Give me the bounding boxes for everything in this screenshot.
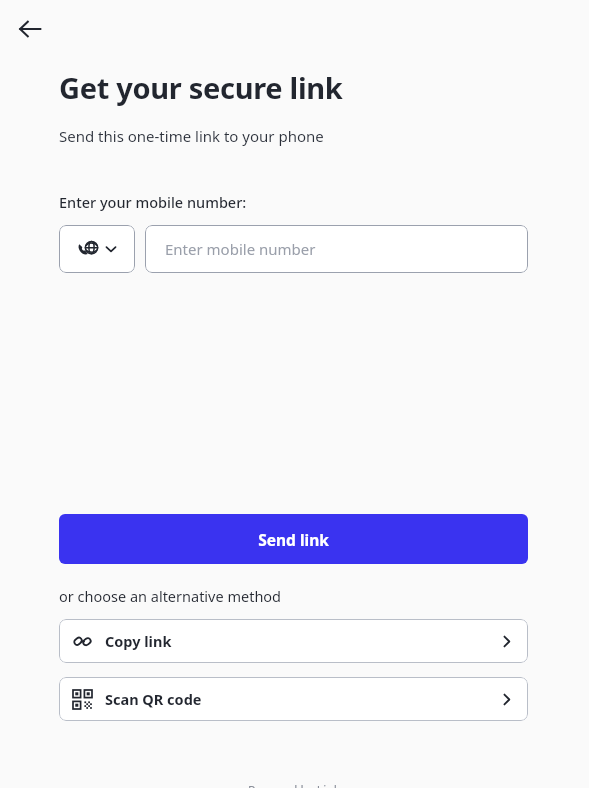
button[interactable]: Send link <box>59 514 528 564</box>
staticText: Scan QR code <box>105 689 202 709</box>
button[interactable]: Back <box>14 13 46 45</box>
button[interactable]: Scan QR code <box>59 677 528 721</box>
button[interactable]: Enter mobile number <box>145 225 528 273</box>
staticText: Send link <box>258 529 329 550</box>
staticText: Send this one-time link to your phone <box>59 126 324 146</box>
button[interactable]: Copy link <box>59 619 528 663</box>
staticText: Copy link <box>105 631 172 651</box>
staticText: or choose an alternative method <box>59 586 282 606</box>
button[interactable]: Select country code <box>59 225 135 273</box>
staticText: Enter mobile number <box>165 239 316 259</box>
staticText: Enter your mobile number: <box>59 192 247 212</box>
staticText: Powered by Link <box>248 782 341 788</box>
staticText: Get your secure link <box>59 68 343 107</box>
